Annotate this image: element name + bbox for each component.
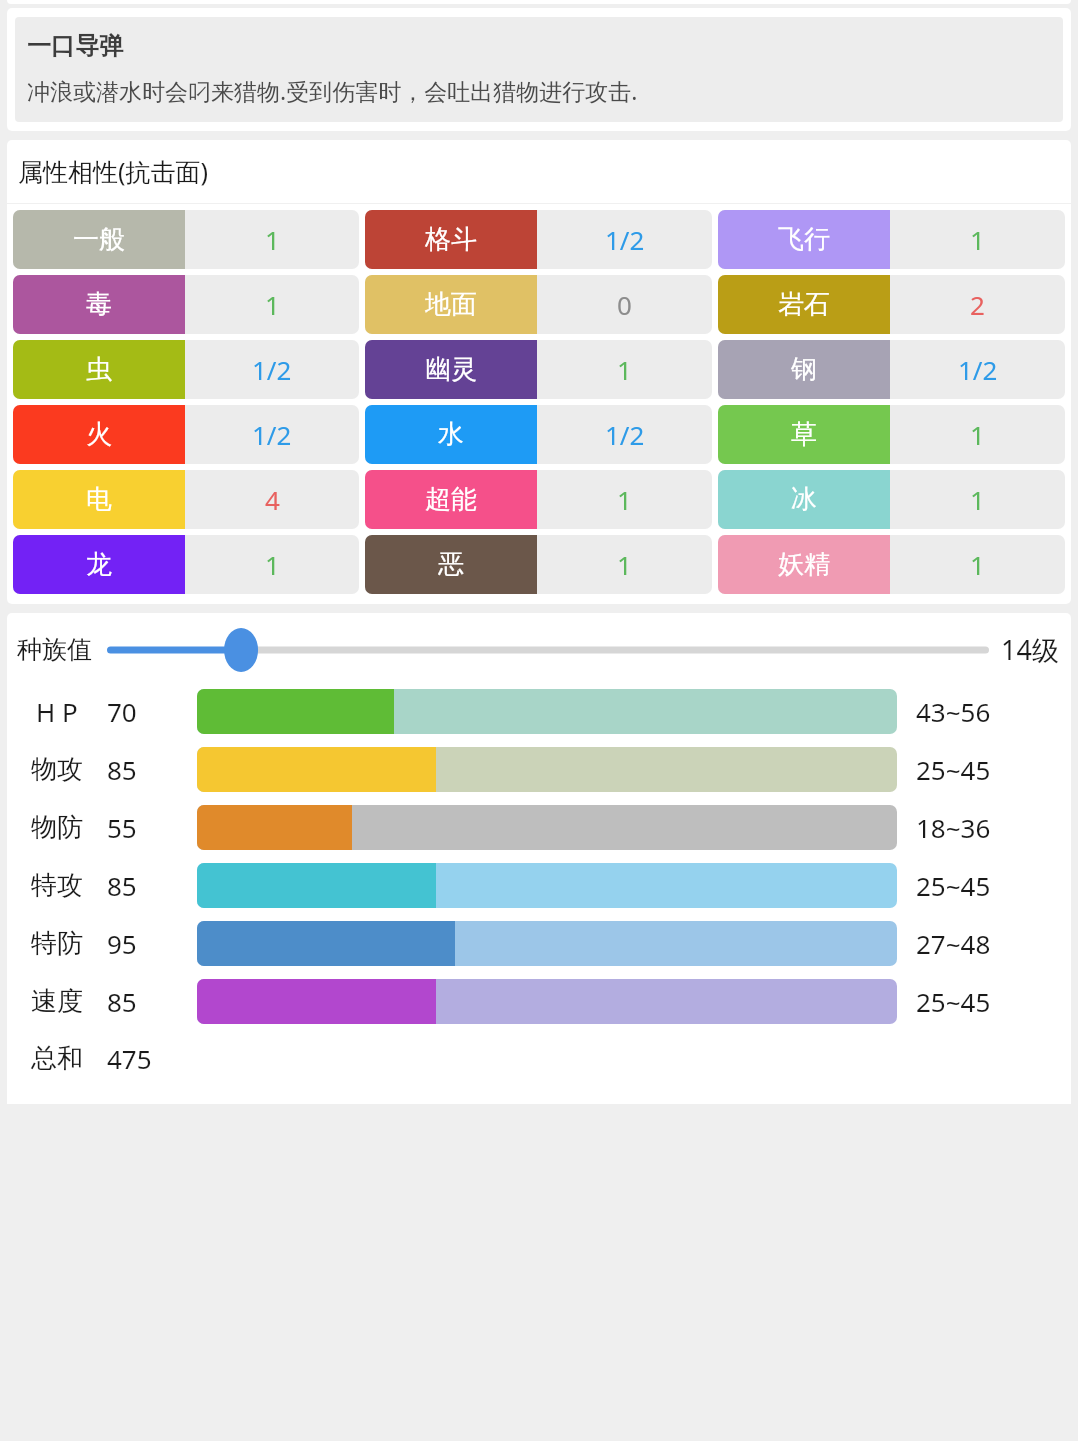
staticText: 物防 [31, 811, 83, 844]
staticText: 物攻 [31, 753, 83, 786]
button[interactable]: 超能 [365, 470, 712, 529]
staticText: 1 [970, 417, 985, 452]
staticText: 1/2 [958, 352, 998, 387]
button[interactable]: 冰 [718, 470, 1065, 529]
staticText: 钢 [791, 353, 817, 386]
staticText: 草 [791, 418, 817, 451]
staticText: 超能 [425, 483, 477, 516]
button[interactable]: 毒 [13, 275, 359, 334]
button[interactable]: H P [7, 682, 1071, 740]
button[interactable]: 龙 [13, 535, 359, 594]
staticText: 25~45 [916, 868, 991, 903]
staticText: 虫 [86, 353, 112, 386]
button[interactable]: 物攻 [7, 740, 1071, 798]
staticText: 妖精 [778, 548, 830, 581]
staticText: 25~45 [916, 984, 991, 1019]
button[interactable]: 电 [13, 470, 359, 529]
staticText: 4 [265, 482, 280, 517]
button[interactable]: 特攻 [7, 856, 1071, 914]
staticText: 14级 [1001, 631, 1059, 668]
button[interactable]: 火 [13, 405, 359, 464]
staticText: 1 [617, 482, 632, 517]
staticText: 冲浪或潜水时会叼来猎物.受到伤害时，会吐出猎物进行攻击. [27, 75, 638, 106]
staticText: 18~36 [916, 810, 991, 845]
button[interactable]: 一般 [13, 210, 359, 269]
staticText: 速度 [31, 985, 83, 1018]
staticText: 55 [107, 810, 137, 845]
staticText: 85 [107, 752, 137, 787]
button[interactable]: 一口导弹 [7, 8, 1071, 131]
staticText: 25~45 [916, 752, 991, 787]
staticText: 43~56 [916, 694, 991, 729]
staticText: 0 [617, 287, 632, 322]
button[interactable]: 虫 [13, 340, 359, 399]
button[interactable]: 草 [718, 405, 1065, 464]
staticText: 1/2 [252, 352, 292, 387]
staticText: 火 [86, 418, 112, 451]
staticText: 1 [970, 482, 985, 517]
staticText: 毒 [86, 288, 112, 321]
staticText: 475 [107, 1041, 152, 1076]
staticText: 恶 [438, 548, 464, 581]
button[interactable]: 格斗 [365, 210, 712, 269]
button[interactable]: 地面 [365, 275, 712, 334]
staticText: 岩石 [778, 288, 830, 321]
staticText: 95 [107, 926, 137, 961]
staticText: 1 [617, 547, 632, 582]
staticText: 冰 [791, 483, 817, 516]
button[interactable]: 幽灵 [365, 340, 712, 399]
staticText: 龙 [86, 548, 112, 581]
staticText: 1 [970, 222, 985, 257]
staticText: 1/2 [252, 417, 292, 452]
button[interactable]: 物防 [7, 798, 1071, 856]
staticText: 85 [107, 868, 137, 903]
staticText: 格斗 [425, 223, 477, 256]
staticText: 70 [107, 694, 137, 729]
staticText: 特攻 [31, 869, 83, 902]
button[interactable]: 飞行 [718, 210, 1065, 269]
button[interactable]: 特防 [7, 914, 1071, 972]
staticText: 1/2 [605, 417, 645, 452]
button[interactable]: 速度 [7, 972, 1071, 1030]
staticText: 电 [86, 483, 112, 516]
staticText: 1 [265, 222, 280, 257]
staticText: 水 [438, 418, 464, 451]
button[interactable]: 钢 [718, 340, 1065, 399]
button[interactable]: 属性相性(抗击面) [7, 140, 1071, 203]
staticText: 1 [265, 287, 280, 322]
button[interactable]: 妖精 [718, 535, 1065, 594]
staticText: 1 [617, 352, 632, 387]
button[interactable]: 岩石 [718, 275, 1065, 334]
staticText: 属性相性(抗击面) [18, 154, 209, 188]
staticText: 飞行 [778, 223, 830, 256]
staticText: 幽灵 [425, 353, 477, 386]
staticText: 85 [107, 984, 137, 1019]
staticText: 一口导弹 [27, 31, 123, 61]
staticText: 总和 [31, 1042, 83, 1075]
staticText: 特防 [31, 927, 83, 960]
staticText: 一般 [73, 223, 125, 256]
staticText: 2 [970, 287, 985, 322]
button[interactable]: Level slider [107, 633, 989, 667]
staticText: 种族值 [17, 634, 92, 665]
staticText: 地面 [425, 288, 477, 321]
staticText: 1 [970, 547, 985, 582]
staticText: 1/2 [605, 222, 645, 257]
staticText: 27~48 [916, 926, 991, 961]
button[interactable]: 水 [365, 405, 712, 464]
button[interactable]: 恶 [365, 535, 712, 594]
staticText: H P [36, 694, 78, 729]
staticText: 1 [265, 547, 280, 582]
